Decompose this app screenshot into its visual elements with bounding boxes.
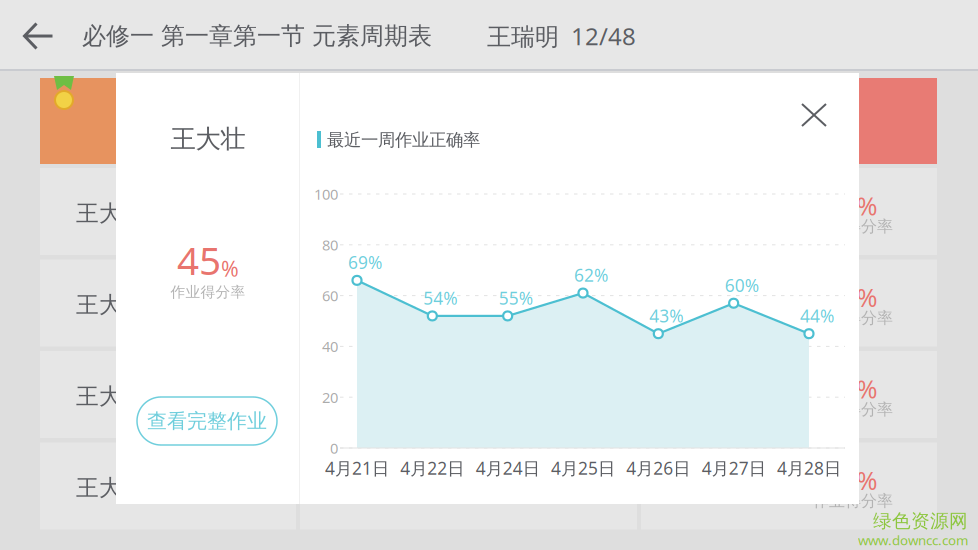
staticText: 45% (828, 372, 877, 405)
staticText: 45% (828, 189, 877, 222)
staticText: 20 (322, 387, 338, 407)
staticText: 0 (330, 438, 338, 458)
staticText: 45% (828, 463, 877, 497)
staticText: 80 (322, 235, 338, 255)
button[interactable]: Back (8, 9, 68, 63)
staticText: 40 (322, 337, 338, 356)
staticText: 4月27日 (702, 456, 766, 479)
staticText: 查看完整作业 (147, 409, 267, 433)
staticText: 必修一 第一章第一节 元素周期表 (82, 21, 432, 51)
staticText: 王瑞明 12/48 (487, 20, 636, 52)
staticText: 4月24日 (476, 456, 540, 479)
staticText: 作业得分率 (813, 491, 893, 511)
staticText: 45 (177, 234, 221, 286)
staticText: 作业得分率 (813, 308, 893, 328)
staticText: 4月28日 (777, 456, 841, 479)
staticText: www.downcc.com (858, 531, 968, 549)
staticText: 60 (322, 286, 338, 305)
staticText: 62% (574, 264, 608, 287)
staticText: 44% (800, 304, 834, 327)
staticText: 69% (348, 251, 382, 274)
staticText: 43% (649, 304, 683, 327)
staticText: 45% (828, 280, 877, 314)
staticText: 4月22日 (400, 456, 464, 479)
staticText: 60% (725, 274, 759, 297)
staticText: 王大壮 (76, 200, 145, 227)
staticText: 绿色资源网 (873, 509, 968, 532)
staticText: 作业得分率 (170, 283, 245, 301)
staticText: 王大壮 (76, 383, 145, 410)
staticText: 最近一周作业正确率 (327, 129, 480, 151)
button[interactable]: Close (792, 93, 836, 137)
staticText: 作业得分率 (813, 399, 893, 419)
staticText: 4月25日 (551, 456, 615, 479)
staticText: 4月21日 (325, 456, 389, 479)
staticText: 王大壮 (170, 123, 245, 154)
staticText: 55% (499, 286, 533, 309)
staticText: % (221, 254, 239, 283)
staticText: 4月26日 (626, 456, 690, 479)
staticText: 王大壮 (76, 291, 145, 319)
button[interactable]: 查看完整作业 (137, 397, 277, 445)
staticText: 王大壮 (76, 474, 145, 502)
staticText: 54% (423, 286, 457, 309)
staticText: 100 (314, 184, 338, 204)
staticText: 作业得分率 (813, 216, 893, 236)
